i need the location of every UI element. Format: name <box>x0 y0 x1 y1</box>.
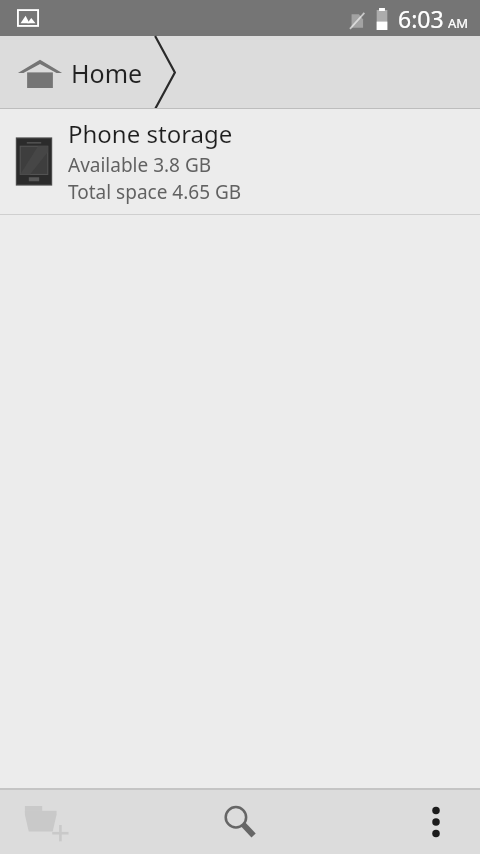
button[interactable]: Phone storage <box>0 109 480 214</box>
staticText: Phone storage <box>68 117 233 150</box>
staticText: Available 3.8 GB <box>68 152 212 178</box>
button[interactable]: New folder <box>0 790 160 854</box>
staticText: 6:03 <box>398 3 444 34</box>
button[interactable]: Home <box>0 36 151 109</box>
staticText: Total space 4.65 GB <box>68 179 242 205</box>
button[interactable]: Search <box>160 790 320 854</box>
staticText: AM <box>448 14 469 32</box>
button[interactable]: More options <box>320 790 480 854</box>
staticText: Home <box>71 56 143 90</box>
